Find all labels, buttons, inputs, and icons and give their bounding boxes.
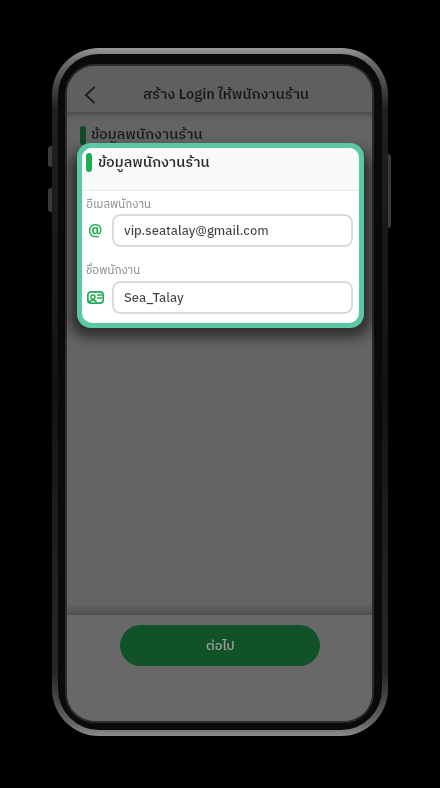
staticText: อีเมลพนักงาน <box>86 195 151 208</box>
staticText: สร้าง Login ให้พนักงานร้าน <box>143 83 310 107</box>
staticText: ข้อมูลพนักงานร้าน <box>98 151 210 175</box>
staticText: ชื่อพนักงาน <box>86 261 141 274</box>
button[interactable]: ต่อไป <box>120 625 320 666</box>
button[interactable] <box>76 82 102 108</box>
staticText: Sea_Talay <box>124 287 184 308</box>
staticText: ต่อไป <box>206 635 235 656</box>
button[interactable]: vip.seatalay@gmail.com <box>112 214 353 247</box>
button[interactable]: Sea_Talay <box>112 281 353 314</box>
staticText: @ <box>88 218 103 244</box>
staticText: vip.seatalay@gmail.com <box>124 220 269 241</box>
staticText: ข้อมูลพนักงานร้าน <box>91 123 203 147</box>
